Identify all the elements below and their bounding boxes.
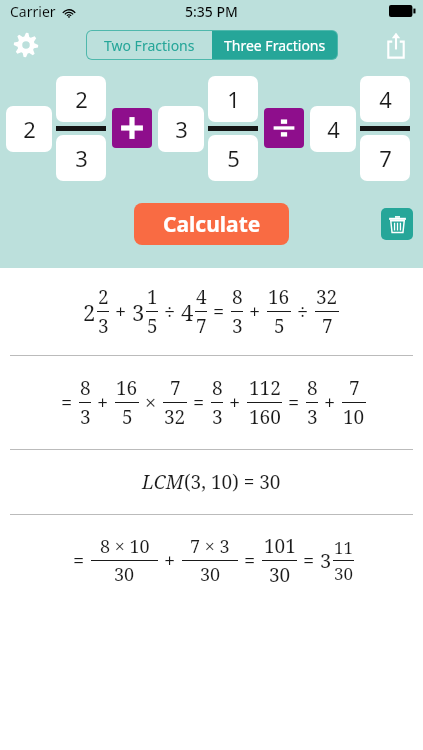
button[interactable]: Share xyxy=(379,28,413,62)
staticText: 3 xyxy=(175,114,188,144)
button[interactable]: 4 xyxy=(310,106,356,152)
staticText: Three Fractions xyxy=(224,36,326,55)
staticText: 5 xyxy=(227,143,240,173)
staticText: = xyxy=(213,298,225,325)
button[interactable]: Two Fractions xyxy=(87,31,212,59)
staticText: + xyxy=(229,389,241,416)
staticText: = xyxy=(303,547,315,574)
staticText: 30 xyxy=(114,562,135,587)
staticText: 16 xyxy=(116,375,138,401)
staticText: 5 xyxy=(147,313,158,339)
staticText: 3 xyxy=(307,404,318,430)
staticText: Calculate xyxy=(163,210,261,239)
staticText: 10 xyxy=(343,404,365,430)
staticText: 30 xyxy=(334,562,354,585)
staticText: 3 xyxy=(98,313,109,339)
staticText: + xyxy=(164,547,176,574)
staticText: 5 xyxy=(122,404,133,430)
staticText: 7 xyxy=(322,313,333,339)
staticText: 11 xyxy=(334,536,354,559)
staticText: = xyxy=(61,389,73,416)
staticText: 30 xyxy=(269,562,291,588)
button[interactable]: 3 xyxy=(56,135,106,181)
staticText: 32 xyxy=(316,284,338,310)
staticText: 8 xyxy=(80,375,91,401)
button[interactable]: Three Fractions xyxy=(212,31,337,59)
staticText: 7 xyxy=(170,375,181,401)
staticText: 2 xyxy=(75,84,88,114)
staticText: 2 xyxy=(98,284,109,310)
staticText: 101 xyxy=(264,533,296,559)
staticText: 7 xyxy=(349,375,360,401)
staticText: 3 xyxy=(320,547,332,574)
staticText: = xyxy=(73,547,85,574)
staticText: (3, 10) = 30 xyxy=(184,469,281,495)
staticText: 160 xyxy=(249,404,281,430)
staticText: ÷ xyxy=(297,298,309,325)
staticText: 8 × 10 xyxy=(100,534,150,559)
staticText: = xyxy=(244,547,256,574)
button[interactable]: Clear xyxy=(381,208,413,240)
staticText: 3 xyxy=(80,404,91,430)
button[interactable]: 1 xyxy=(208,76,258,122)
staticText: 2 xyxy=(23,114,36,144)
button[interactable]: 5 xyxy=(208,135,258,181)
staticText: 8 xyxy=(307,375,318,401)
staticText: 5 xyxy=(274,313,285,339)
button[interactable]: Calculate xyxy=(134,203,289,245)
staticText: = xyxy=(288,389,300,416)
button[interactable]: Plus xyxy=(112,108,152,148)
staticText: 4 xyxy=(196,284,207,310)
button[interactable]: 3 xyxy=(158,106,204,152)
staticText: 4 xyxy=(181,297,194,327)
staticText: Two Fractions xyxy=(104,36,195,55)
button[interactable]: 7 xyxy=(360,135,410,181)
button[interactable]: 4 xyxy=(360,76,410,122)
staticText: 7 × 3 xyxy=(190,534,230,559)
staticText: 8 xyxy=(232,284,243,310)
staticText: 16 xyxy=(268,284,290,310)
staticText: + xyxy=(97,389,109,416)
staticText: + xyxy=(324,389,336,416)
staticText: 4 xyxy=(379,84,392,114)
staticText: 8 xyxy=(212,375,223,401)
staticText: 5:35 PM xyxy=(185,2,238,21)
staticText: 30 xyxy=(200,562,221,587)
staticText: × xyxy=(145,389,157,416)
staticText: 7 xyxy=(379,143,392,173)
staticText: 3 xyxy=(212,404,223,430)
staticText: 32 xyxy=(164,404,186,430)
staticText: 1 xyxy=(227,84,240,114)
staticText: 112 xyxy=(249,375,281,401)
staticText: 1 xyxy=(147,284,158,310)
staticText: 7 xyxy=(196,313,207,339)
staticText: + xyxy=(249,298,261,325)
button[interactable]: 2 xyxy=(56,76,106,122)
button[interactable]: 2 xyxy=(6,106,52,152)
staticText: 4 xyxy=(327,114,340,144)
staticText: ÷ xyxy=(164,298,176,325)
staticText: 3 xyxy=(232,313,243,339)
staticText: 3 xyxy=(132,297,145,327)
staticText: LCM xyxy=(142,469,184,495)
staticText: 2 xyxy=(83,297,96,327)
staticText: 3 xyxy=(75,143,88,173)
staticText: = xyxy=(193,389,205,416)
button[interactable]: Divide xyxy=(264,108,304,148)
staticText: Carrier xyxy=(10,2,56,21)
button[interactable]: Settings xyxy=(8,27,44,63)
staticText: + xyxy=(115,298,127,325)
